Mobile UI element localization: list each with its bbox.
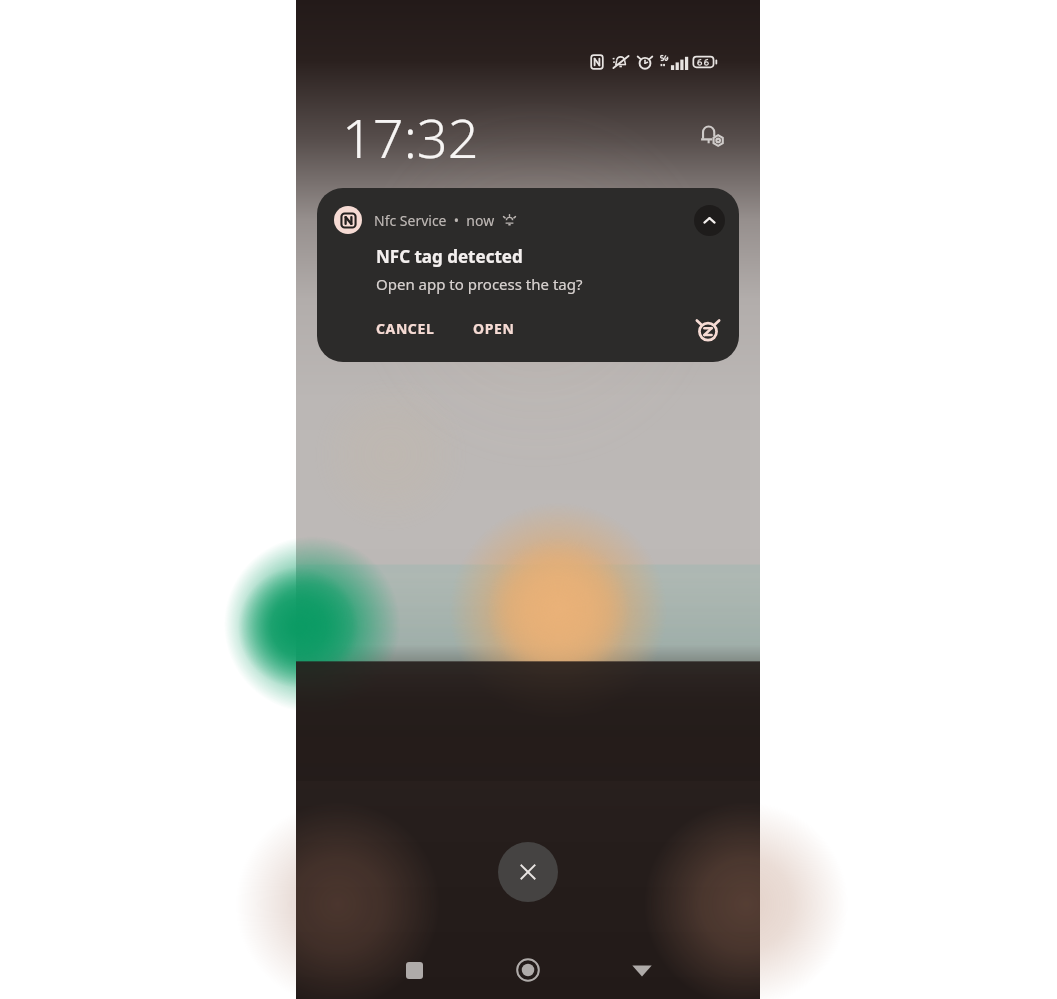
staticText: NFC tag detected [376, 245, 523, 268]
button[interactable]: Notification settings [692, 116, 732, 156]
button[interactable]: CANCEL [364, 312, 447, 345]
button[interactable]: OPEN [461, 312, 527, 345]
staticText: CANCEL [376, 319, 435, 338]
button[interactable]: Back [620, 948, 664, 992]
button[interactable]: Home [506, 948, 550, 992]
staticText: Open app to process the tag? [376, 274, 583, 294]
staticText: OPEN [473, 319, 515, 338]
staticText: Nfc Service • now [374, 211, 495, 230]
button[interactable]: Collapse [694, 205, 725, 236]
staticText: 17:32 [342, 100, 479, 174]
button[interactable]: Nfc Service • now [317, 188, 739, 362]
button[interactable]: Clear all notifications [498, 842, 558, 902]
button[interactable]: Recent apps [392, 948, 436, 992]
button[interactable]: Snooze [691, 312, 725, 346]
